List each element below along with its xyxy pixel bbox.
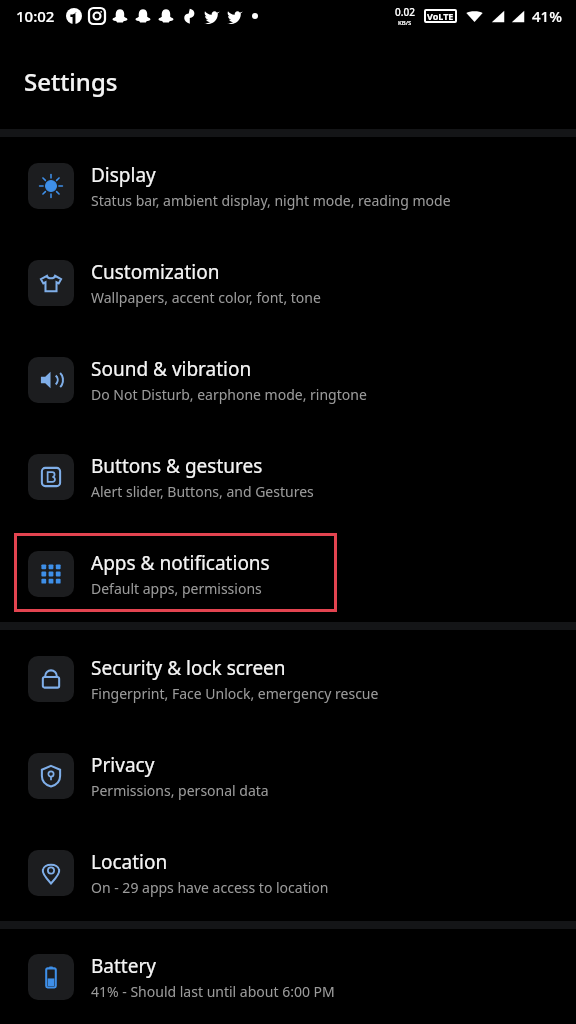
button[interactable]: Customization [0,234,576,331]
button[interactable]: Display [0,137,576,234]
button[interactable]: Sound & vibration [0,331,576,428]
staticText: Display [91,162,156,188]
staticText: KB/S [398,19,412,27]
button[interactable]: Privacy [0,727,576,824]
staticText: VoLTE [427,10,454,22]
staticText: Status bar, ambient display, night mode,… [91,191,451,210]
staticText: On - 29 apps have access to location [91,878,329,897]
button[interactable]: Security & lock screen [0,630,576,727]
staticText: Sound & vibration [91,356,252,382]
button[interactable]: Location [0,824,576,921]
staticText: Alert slider, Buttons, and Gestures [91,482,314,501]
staticText: Permissions, personal data [91,781,269,800]
staticText: Do Not Disturb, earphone mode, ringtone [91,385,367,404]
staticText: Default apps, permissions [91,579,262,598]
staticText: Battery [91,953,156,979]
button[interactable]: Buttons & gestures [0,428,576,525]
staticText: Buttons & gestures [91,453,263,479]
staticText: Privacy [91,752,155,778]
staticText: 41% [532,6,562,26]
staticText: Location [91,849,168,875]
staticText: Security & lock screen [91,655,286,681]
staticText: Settings [24,65,118,98]
staticText: Customization [91,259,220,285]
button[interactable]: Apps & notifications [0,525,576,622]
staticText: Fingerprint, Face Unlock, emergency resc… [91,684,379,703]
staticText: 0.02 [395,5,415,19]
staticText: Apps & notifications [91,550,270,576]
staticText: Wallpapers, accent color, font, tone [91,288,321,307]
staticText: 10:02 [16,6,55,26]
button[interactable]: Battery [0,929,576,1024]
staticText: 41% - Should last until about 6:00 PM [91,982,335,1001]
